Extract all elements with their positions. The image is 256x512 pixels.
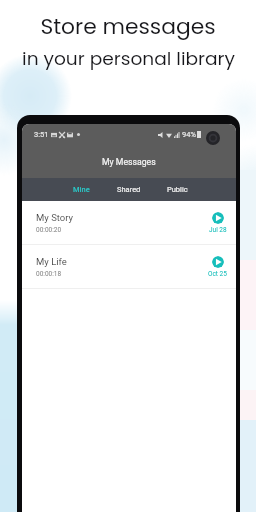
staticText: Store messages [40, 11, 216, 42]
staticText: My Story [36, 212, 74, 223]
staticText: Public [167, 185, 188, 194]
staticText: 3:51 [34, 130, 49, 139]
staticText: Shared [117, 185, 141, 194]
button[interactable]: Shared [105, 178, 153, 201]
staticText: Mine [73, 185, 90, 194]
staticText: in your personal library [22, 45, 235, 71]
button[interactable]: Play My Story [212, 212, 224, 224]
staticText: My Messages [102, 157, 156, 167]
staticText: My Life [36, 256, 67, 267]
staticText: Oct 25 [208, 270, 227, 278]
staticText: 00:00:20 [36, 226, 62, 234]
button[interactable]: My Story [22, 201, 236, 245]
staticText: Jul 28 [209, 226, 227, 234]
button[interactable]: Mine [58, 178, 105, 201]
button[interactable]: Play My Life [212, 256, 224, 268]
button[interactable]: Public [153, 178, 201, 201]
staticText: 94% [182, 130, 196, 139]
button[interactable]: My Life [22, 245, 236, 289]
staticText: 00:00:18 [36, 270, 62, 278]
